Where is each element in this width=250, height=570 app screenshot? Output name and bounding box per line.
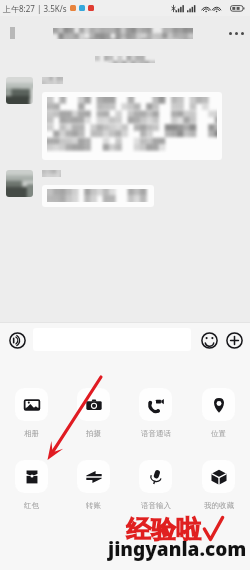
button[interactable]: 转账 [62,460,124,510]
staticText: 语音输入 [141,501,171,510]
staticText: 相册 [24,429,39,438]
staticText: 转账 [86,501,101,510]
button[interactable]: 相册 [0,388,62,438]
button[interactable]: 拍摄 [62,388,124,438]
button[interactable]: More [222,16,250,50]
button[interactable]: Voice message [5,328,29,352]
button[interactable]: 位置 [187,388,250,438]
button[interactable]: 我的收藏 [187,460,250,510]
button[interactable]: Back [0,16,24,50]
button[interactable]: More options [222,328,246,352]
button[interactable]: 红包 [0,460,62,510]
staticText: 位置 [211,429,226,438]
staticText: jingyanla.com [108,536,247,562]
staticText: 拍摄 [86,429,101,438]
staticText: 上午8:27 | 3.5K/s [3,3,67,14]
staticText: 经验啦 [126,514,201,545]
button[interactable]: 语音通话 [124,388,187,438]
staticText: 红包 [24,501,39,510]
staticText: 我的收藏 [204,501,234,510]
button[interactable]: Emoji [197,328,221,352]
staticText: 语音通话 [141,429,171,438]
button[interactable]: 语音输入 [124,460,187,510]
